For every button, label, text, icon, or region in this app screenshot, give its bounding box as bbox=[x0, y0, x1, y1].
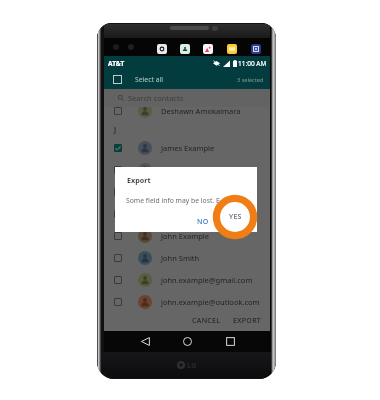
staticText: Search contacts bbox=[128, 93, 184, 103]
button[interactable]: john.example@gmail.com bbox=[104, 269, 270, 291]
button[interactable]: Jane Example bbox=[104, 159, 270, 181]
button[interactable]: Select all bbox=[104, 70, 270, 89]
staticText: John Example bbox=[161, 231, 209, 241]
button[interactable]: James Example bbox=[104, 137, 270, 159]
button[interactable]: App shortcut bbox=[227, 44, 237, 54]
staticText: EXPORT bbox=[233, 316, 262, 326]
button[interactable]: App shortcut bbox=[180, 44, 190, 54]
staticText: J bbox=[114, 125, 117, 134]
staticText: CANCEL bbox=[192, 316, 221, 326]
staticText: YES bbox=[229, 217, 242, 227]
staticText: Deshawn Amokaimara bbox=[161, 106, 241, 116]
staticText: Select all bbox=[135, 75, 163, 84]
button[interactable]: Deshawn Amokaimara bbox=[104, 100, 270, 122]
button[interactable]: App shortcut bbox=[157, 44, 167, 54]
button[interactable]: John Smith bbox=[104, 247, 270, 269]
button[interactable]: CANCEL bbox=[190, 314, 223, 328]
staticText: LG bbox=[187, 360, 197, 370]
staticText: 11:00 AM bbox=[238, 59, 267, 68]
button[interactable]: App shortcut bbox=[251, 44, 261, 54]
button[interactable]: EXPORT bbox=[231, 314, 264, 328]
button[interactable]: John Example bbox=[104, 225, 270, 247]
button[interactable]: Search contacts bbox=[104, 89, 270, 107]
button[interactable]: App shortcut bbox=[203, 44, 213, 54]
staticText: Some field info may be lost. E bbox=[126, 196, 220, 205]
staticText: Export bbox=[127, 175, 151, 185]
staticText: Joanna Example bbox=[161, 209, 218, 219]
staticText: James Example bbox=[161, 143, 215, 153]
staticText: John Smith bbox=[161, 253, 200, 263]
button[interactable]: john.example@outlook.com bbox=[104, 291, 270, 313]
button[interactable]: Back bbox=[136, 332, 154, 350]
staticText: john.example@outlook.com bbox=[161, 297, 260, 307]
button[interactable]: Jerry Example bbox=[104, 181, 270, 203]
staticText: Jane Example bbox=[161, 165, 209, 175]
staticText: NO bbox=[197, 217, 209, 227]
button[interactable]: Recents bbox=[221, 332, 239, 350]
button[interactable]: YES bbox=[225, 213, 246, 231]
staticText: AT&T bbox=[108, 59, 125, 68]
button[interactable]: NO bbox=[193, 213, 213, 231]
button[interactable]: Home bbox=[178, 332, 196, 350]
staticText: 3 selected bbox=[237, 76, 264, 84]
staticText: john.example@gmail.com bbox=[161, 275, 253, 285]
staticText: YES bbox=[229, 212, 242, 222]
button[interactable]: Joanna Example bbox=[104, 203, 270, 225]
